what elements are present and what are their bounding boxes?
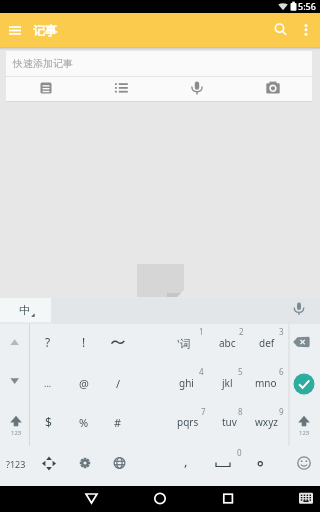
button[interactable] (206, 363, 248, 403)
button[interactable] (4, 17, 28, 43)
button[interactable] (268, 17, 294, 43)
staticText: ... (44, 377, 52, 389)
button[interactable] (66, 403, 102, 444)
button[interactable] (236, 76, 308, 101)
button[interactable] (248, 323, 289, 363)
button[interactable] (0, 444, 29, 485)
staticText: 2 (239, 326, 244, 337)
button[interactable] (289, 444, 320, 485)
button[interactable] (289, 363, 320, 403)
button[interactable] (66, 323, 102, 363)
staticText: % (79, 415, 89, 430)
staticText: ? (45, 334, 51, 350)
button[interactable] (30, 403, 66, 444)
button[interactable] (248, 363, 289, 403)
button[interactable] (206, 323, 248, 363)
button[interactable] (0, 298, 51, 323)
staticText: , (184, 452, 188, 470)
staticText: 3 (279, 326, 284, 337)
button[interactable] (248, 403, 289, 444)
staticText: ?123 (6, 458, 26, 470)
button[interactable] (206, 486, 250, 512)
button[interactable] (164, 363, 206, 403)
staticText: 9 (279, 406, 284, 417)
button[interactable] (206, 444, 248, 485)
staticText: 0 (237, 447, 242, 458)
button[interactable] (10, 76, 82, 101)
button[interactable] (102, 323, 138, 363)
staticText: 快速添加记事 (13, 57, 73, 70)
button[interactable] (70, 486, 114, 512)
staticText: 4 (199, 366, 204, 377)
staticText: 6 (279, 366, 284, 377)
button[interactable] (0, 363, 29, 403)
button[interactable] (66, 444, 102, 485)
button[interactable] (102, 403, 138, 444)
button[interactable] (0, 323, 29, 363)
button[interactable] (206, 403, 248, 444)
button[interactable] (30, 444, 66, 485)
button[interactable] (138, 486, 182, 512)
button[interactable] (248, 444, 289, 485)
button[interactable] (102, 363, 138, 403)
button[interactable] (289, 323, 320, 363)
button[interactable] (164, 444, 206, 485)
button[interactable] (160, 76, 232, 101)
staticText: # (114, 415, 122, 430)
staticText: 123 (299, 429, 310, 437)
staticText: 记事 (33, 23, 57, 38)
staticText: jkl (222, 376, 233, 390)
button[interactable] (30, 323, 66, 363)
staticText: 1 (199, 326, 204, 337)
staticText: ghi (179, 376, 194, 390)
staticText: ! (82, 334, 86, 350)
staticText: 5:56 (298, 0, 316, 12)
button[interactable] (289, 403, 320, 444)
button[interactable] (102, 444, 138, 485)
staticText: 中 (19, 303, 30, 317)
staticText: / (116, 376, 121, 391)
staticText: pqrs (177, 415, 199, 429)
staticText: @ (79, 376, 89, 391)
staticText: tuv (222, 415, 237, 429)
button[interactable] (164, 323, 206, 363)
staticText: 123 (11, 429, 22, 437)
button[interactable] (66, 363, 102, 403)
button[interactable] (296, 17, 320, 43)
staticText: wxyz (255, 415, 278, 429)
staticText: 7 (201, 406, 206, 417)
button[interactable] (164, 403, 206, 444)
staticText: '词 (177, 336, 191, 351)
staticText: 8 (238, 406, 243, 417)
button[interactable] (85, 76, 157, 101)
staticText: def (259, 336, 275, 350)
staticText: abc (219, 336, 236, 350)
staticText: 5 (238, 366, 243, 377)
staticText: mno (255, 376, 277, 390)
button[interactable] (30, 363, 66, 403)
staticText: $ (45, 414, 52, 430)
button[interactable] (292, 486, 320, 512)
button[interactable] (0, 403, 29, 444)
button[interactable]: 快速添加记事 (6, 51, 312, 76)
